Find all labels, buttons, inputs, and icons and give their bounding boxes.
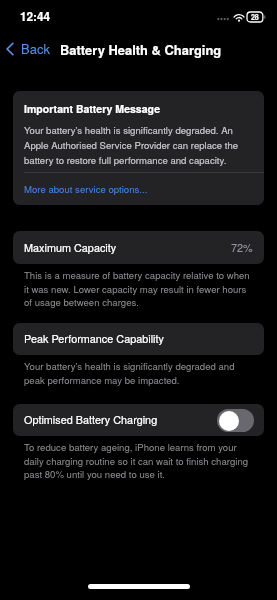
staticText: More about service options...: [24, 182, 148, 196]
button[interactable]: More about service options...: [13, 173, 264, 205]
staticText: Your battery's health is significantly d…: [24, 123, 253, 167]
button[interactable]: Peak Performance Capability: [13, 323, 264, 355]
staticText: 12:44: [20, 8, 51, 25]
staticText: 28: [251, 12, 259, 22]
staticText: Peak Performance Capability: [24, 331, 164, 347]
staticText: Your battery's health is significantly d…: [24, 359, 252, 386]
staticText: This is a measure of battery capacity re…: [24, 268, 252, 308]
staticText: Maximum Capacity: [24, 240, 117, 256]
staticText: Back: [21, 39, 50, 58]
button[interactable]: Back: [0, 35, 56, 62]
staticText: Battery Health & Charging: [60, 40, 222, 59]
staticText: Important Battery Message: [24, 101, 161, 116]
staticText: Optimised Battery Charging: [24, 412, 158, 428]
staticText: To reduce battery ageing, iPhone learns …: [24, 440, 252, 480]
button[interactable]: Optimised Battery Charging, off: [217, 409, 254, 432]
staticText: 72%: [231, 240, 253, 256]
button[interactable]: Maximum Capacity: [13, 231, 264, 264]
